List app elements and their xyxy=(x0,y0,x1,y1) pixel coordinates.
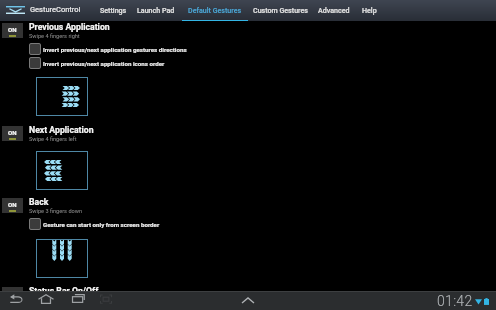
button[interactable]: Home xyxy=(33,291,59,310)
button[interactable]: Toggle Previous Application xyxy=(0,23,496,40)
button[interactable]: Default Gestures xyxy=(182,0,248,21)
button[interactable]: Invert previous/next application icons o… xyxy=(0,57,496,69)
staticText: Launch Pad xyxy=(137,6,175,14)
staticText: Next Application xyxy=(29,125,94,135)
button[interactable]: Invert previous/next application gesture… xyxy=(0,43,496,55)
button[interactable]: Status: 01:42, battery xyxy=(437,293,489,309)
button[interactable]: Gesture preview xyxy=(36,239,88,278)
staticText: Default Gestures xyxy=(188,6,242,14)
button[interactable]: Toggle Previous Application xyxy=(2,23,23,38)
button[interactable]: Screenshot xyxy=(95,291,117,310)
staticText: Previous Application xyxy=(29,22,110,32)
button[interactable]: Gesture preview xyxy=(36,151,88,190)
staticText: GestureControl xyxy=(30,5,81,14)
staticText: 01:42 xyxy=(437,293,473,309)
button[interactable]: Custom Gestures xyxy=(248,0,313,21)
staticText: Swipe 4 fingers left xyxy=(29,136,77,143)
staticText: ON xyxy=(8,129,17,136)
staticText: Back xyxy=(29,197,49,207)
staticText: Custom Gestures xyxy=(253,6,308,14)
staticText: Swipe 4 fingers right xyxy=(29,33,80,40)
button[interactable]: Toggle Back xyxy=(2,198,23,213)
button[interactable]: Toggle Status Bar On/Off xyxy=(0,287,496,291)
staticText: Invert previous/next application gesture… xyxy=(43,46,187,53)
button[interactable]: Advanced xyxy=(313,0,355,21)
button[interactable]: App icon xyxy=(2,0,28,20)
button[interactable]: Launch Pad xyxy=(131,0,180,21)
staticText: Advanced xyxy=(318,6,350,14)
staticText: Invert previous/next application icons o… xyxy=(43,60,165,67)
button[interactable]: Gesture can start only from screen borde… xyxy=(0,218,496,230)
button[interactable]: Settings xyxy=(95,0,132,21)
button[interactable]: Back xyxy=(5,291,28,310)
staticText: Swipe 3 fingers down xyxy=(29,208,83,215)
staticText: Status Bar On/Off xyxy=(29,286,99,291)
staticText: ON xyxy=(8,201,17,208)
button[interactable]: Help xyxy=(357,0,382,21)
staticText: Help xyxy=(362,6,377,14)
button[interactable]: Toggle Back xyxy=(0,198,496,215)
staticText: Gesture can start only from screen borde… xyxy=(43,221,160,228)
staticText: Settings xyxy=(100,6,127,14)
button[interactable]: Toggle Next Application xyxy=(0,126,496,143)
button[interactable]: Toggle Next Application xyxy=(2,126,23,141)
staticText: ON xyxy=(8,26,17,33)
button[interactable]: Show notifications xyxy=(234,291,262,310)
button[interactable]: Recent apps xyxy=(67,291,90,310)
button[interactable]: Gesture preview xyxy=(36,77,88,116)
